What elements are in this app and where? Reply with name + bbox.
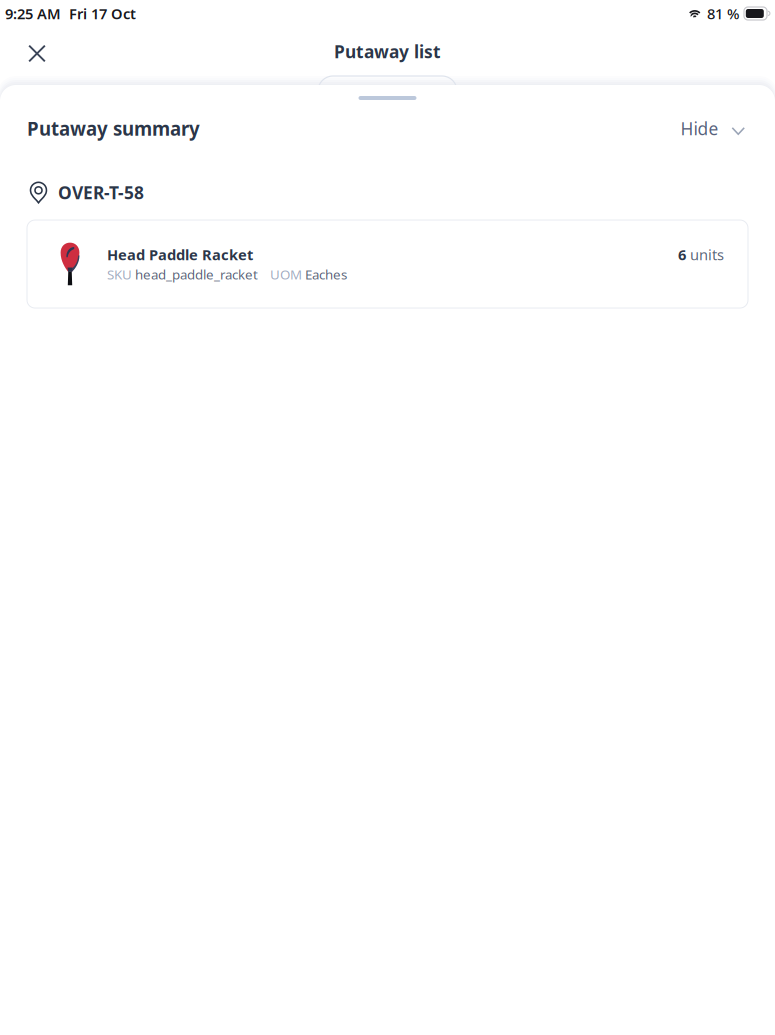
staticText: units — [690, 245, 724, 264]
staticText: OVER-T-58 — [58, 181, 144, 204]
staticText: 81 % — [707, 4, 739, 23]
staticText: Eaches — [305, 265, 347, 283]
staticText: Putaway summary — [27, 116, 200, 141]
button[interactable]: Hide — [680, 111, 748, 146]
staticText: Putaway list — [334, 40, 441, 63]
staticText: UOM — [270, 265, 305, 283]
staticText: 6 — [678, 245, 690, 264]
staticText: Hide — [680, 117, 718, 140]
staticText: Head Paddle Racket — [107, 245, 253, 264]
staticText: Fri 17 Oct — [69, 4, 136, 23]
button[interactable]: Head Paddle Racket — [27, 220, 748, 308]
staticText: SKU — [107, 265, 135, 283]
staticText: head_paddle_racket — [135, 265, 258, 283]
button[interactable]: Close — [15, 27, 59, 75]
staticText: 9:25 AM — [5, 4, 61, 23]
